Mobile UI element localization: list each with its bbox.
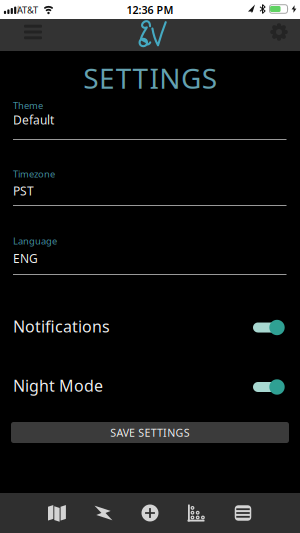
staticText: ENG bbox=[13, 250, 38, 266]
button[interactable]: Settings bbox=[264, 17, 294, 47]
staticText: Theme bbox=[13, 99, 43, 111]
button[interactable]: Map bbox=[34, 493, 80, 533]
button[interactable]: Add bbox=[127, 493, 173, 533]
staticText: Default bbox=[13, 112, 54, 128]
staticText: Language bbox=[13, 235, 57, 247]
staticText: PST bbox=[13, 183, 34, 199]
staticText: SAVE SETTINGS bbox=[110, 425, 190, 440]
button[interactable]: Theme bbox=[13, 100, 287, 141]
staticText: SETTINGS bbox=[83, 59, 217, 96]
button[interactable]: Timezone bbox=[13, 168, 287, 209]
staticText: 12:36 PM bbox=[126, 3, 173, 17]
button[interactable]: Activity bbox=[80, 493, 127, 533]
button[interactable]: List bbox=[220, 493, 266, 533]
button[interactable]: SAVE SETTINGS bbox=[11, 422, 289, 443]
button[interactable]: Menu bbox=[16, 17, 50, 47]
button[interactable]: Stats bbox=[173, 493, 220, 533]
staticText: AT&T bbox=[17, 4, 38, 16]
staticText: Notifications bbox=[13, 316, 110, 337]
button[interactable]: Language bbox=[13, 235, 287, 276]
button[interactable]: Toggle bbox=[253, 378, 286, 396]
staticText: Night Mode bbox=[13, 375, 103, 396]
button[interactable]: Toggle bbox=[253, 318, 286, 336]
staticText: Timezone bbox=[13, 168, 55, 180]
